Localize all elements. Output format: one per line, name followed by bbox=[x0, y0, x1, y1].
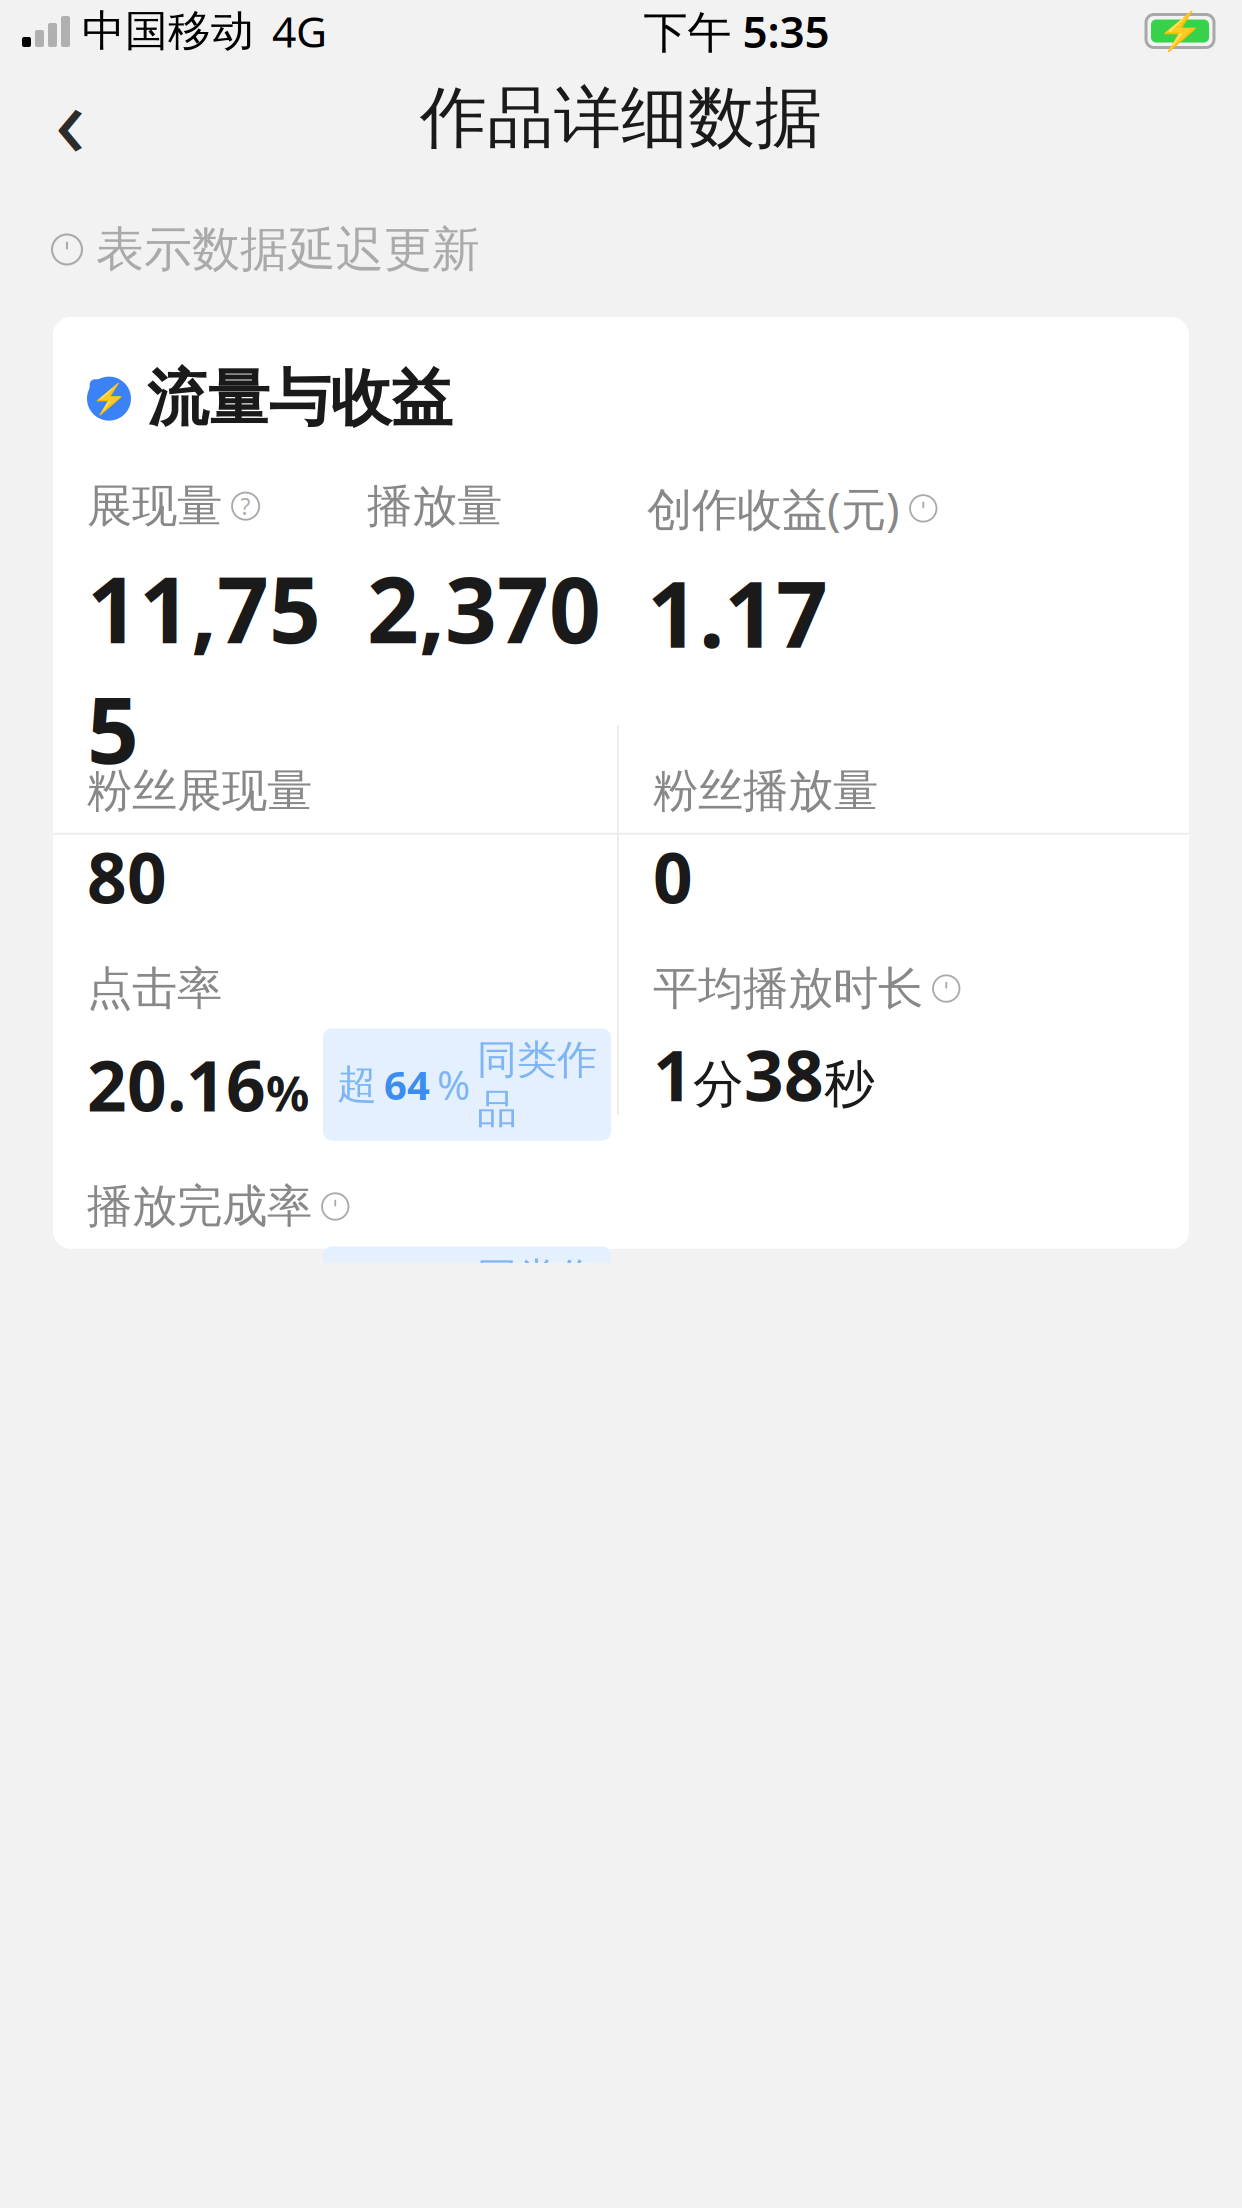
staticText: 0 bbox=[653, 831, 693, 923]
staticText: 64 bbox=[384, 1058, 430, 1111]
button[interactable]: 返回 bbox=[22, 70, 118, 166]
staticText: 38 bbox=[744, 1028, 824, 1120]
staticText: 播放完成率 bbox=[87, 1179, 312, 1234]
staticText: 表示数据延迟更新 bbox=[96, 220, 480, 279]
staticText: 点击率 bbox=[87, 961, 222, 1016]
staticText: % bbox=[266, 1061, 309, 1125]
staticText: % bbox=[437, 1058, 470, 1111]
staticText: 20.16 bbox=[87, 1038, 266, 1131]
staticText: 粉丝展现量 bbox=[87, 763, 312, 819]
staticText: 分 bbox=[693, 1053, 744, 1115]
staticText: ? bbox=[241, 491, 251, 521]
staticText: 粉丝播放量 bbox=[653, 763, 878, 819]
staticText: 4G bbox=[272, 3, 327, 59]
staticText: 80 bbox=[87, 831, 167, 923]
staticText: 流量与收益 bbox=[147, 361, 452, 436]
staticText: 超 bbox=[337, 1060, 377, 1109]
staticText: 平均播放时长 bbox=[653, 961, 923, 1016]
staticText: 2,370 bbox=[367, 548, 601, 668]
staticText: 1.17 bbox=[647, 552, 828, 673]
staticText: ‹ bbox=[54, 51, 85, 185]
staticText: 下午 5:35 bbox=[643, 2, 829, 60]
staticText: 播放量 bbox=[367, 478, 502, 534]
staticText: 作品详细数据 bbox=[420, 77, 822, 159]
staticText: 同类作品 bbox=[477, 1253, 597, 1352]
staticText: 同类作品 bbox=[477, 1035, 597, 1134]
staticText: 1 bbox=[653, 1028, 693, 1120]
staticText: 秒 bbox=[824, 1053, 875, 1115]
staticText: 中国移动 bbox=[82, 5, 254, 57]
staticText: ⚡ bbox=[1157, 10, 1203, 52]
staticText: 展现量 bbox=[87, 478, 222, 534]
staticText: 创作收益(元) bbox=[647, 478, 900, 538]
staticText: 11,755 bbox=[87, 548, 321, 789]
staticText: ⚡ bbox=[90, 382, 127, 415]
